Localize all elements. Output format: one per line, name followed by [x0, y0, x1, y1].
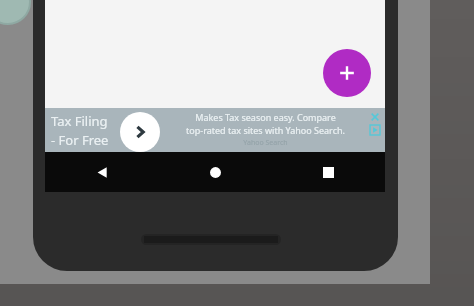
button[interactable]: Add	[323, 49, 371, 97]
button[interactable]: Open ad	[120, 112, 160, 152]
staticText: - For Free	[51, 131, 109, 149]
button[interactable]: Recent apps	[272, 152, 385, 192]
staticText: Yahoo Search	[243, 138, 288, 148]
staticText: Makes Tax season easy. Compare	[195, 111, 336, 123]
button[interactable]: Ad choices	[369, 124, 381, 136]
button[interactable]: Tax Filing	[45, 108, 385, 152]
button[interactable]: Back	[45, 152, 159, 192]
button[interactable]: Home	[159, 152, 272, 192]
button[interactable]: Close ad	[369, 111, 381, 123]
staticText: top-rated tax sites with Yahoo Search.	[186, 124, 345, 136]
staticText: Tax Filing	[51, 112, 108, 130]
